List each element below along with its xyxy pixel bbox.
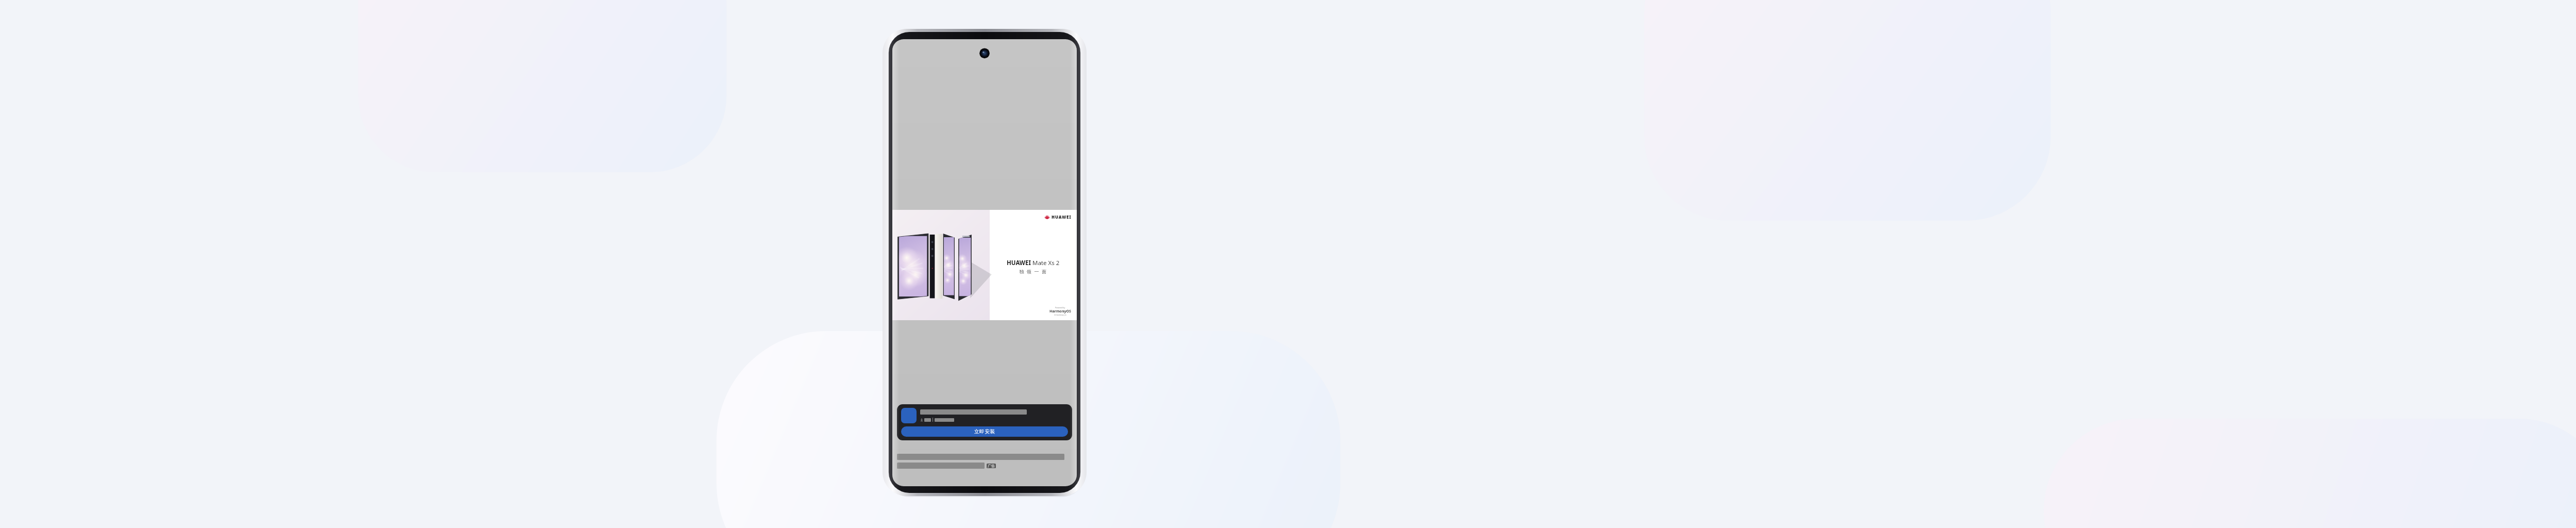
staticText: HarmonyOS — [1049, 309, 1071, 314]
staticText: 广告 — [988, 464, 995, 468]
button[interactable]: 立即安装 — [901, 426, 1068, 437]
staticText: HUAWEI — [1052, 214, 1072, 220]
other: HUAWEI Mate Xs 2 advertisement preview — [883, 29, 1087, 496]
button[interactable]: 立即安装 — [897, 404, 1072, 440]
staticText: HUAWEI — [1007, 259, 1031, 267]
button[interactable]: HUAWEI — [892, 210, 1077, 320]
staticText: 独 领 一 面 — [1019, 268, 1047, 274]
staticText: Mate Xs 2 — [1031, 259, 1060, 267]
staticText: 立即安装 — [974, 428, 995, 435]
button[interactable]: 广告 — [987, 464, 996, 468]
staticText: 华为终端有限公司 — [1054, 314, 1066, 316]
staticText: Powered by — [1055, 306, 1065, 309]
